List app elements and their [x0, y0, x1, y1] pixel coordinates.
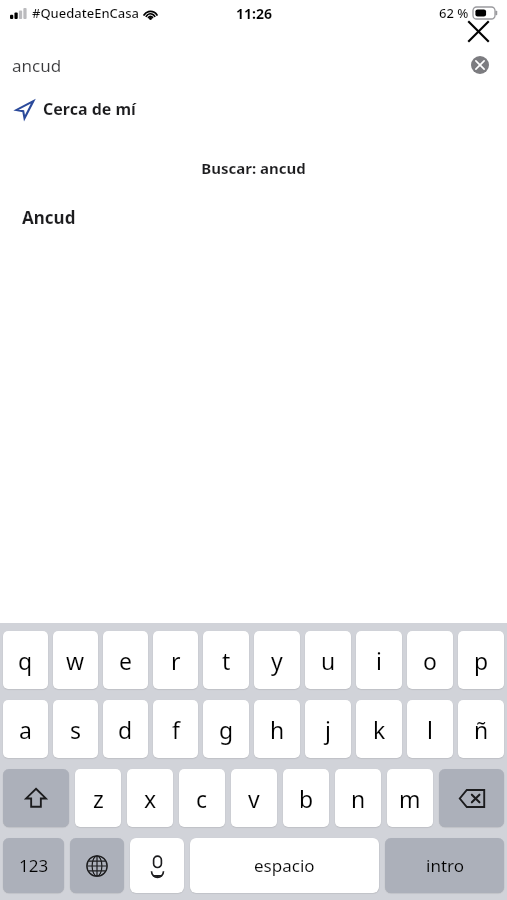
button[interactable]: x: [127, 769, 173, 827]
staticText: v: [248, 783, 260, 814]
staticText: o: [423, 645, 437, 676]
button[interactable]: Dictado por voz: [130, 838, 184, 893]
staticText: b: [299, 783, 314, 814]
button[interactable]: q: [3, 631, 48, 689]
staticText: #QuedateEnCasa: [32, 4, 139, 22]
staticText: q: [18, 645, 33, 676]
staticText: 11:26: [236, 4, 272, 23]
button[interactable]: b: [283, 769, 329, 827]
staticText: p: [474, 645, 489, 676]
button[interactable]: h: [254, 700, 300, 758]
button[interactable]: w: [53, 631, 98, 689]
button[interactable]: n: [335, 769, 381, 827]
staticText: ñ: [474, 714, 489, 745]
staticText: Buscar: ancud: [0, 158, 507, 178]
button[interactable]: intro: [385, 838, 504, 893]
staticText: 62 %: [439, 4, 469, 22]
staticText: ancud: [12, 54, 62, 77]
staticText: l: [427, 714, 433, 745]
button[interactable]: Cambiar teclado: [70, 838, 124, 893]
staticText: Ancud: [22, 206, 76, 229]
button[interactable]: o: [407, 631, 453, 689]
staticText: r: [171, 645, 181, 676]
button[interactable]: Cerrar: [461, 14, 495, 48]
staticText: i: [376, 645, 382, 676]
button[interactable]: z: [75, 769, 121, 827]
staticText: n: [351, 783, 366, 814]
button[interactable]: j: [305, 700, 351, 758]
button[interactable]: y: [254, 631, 300, 689]
staticText: f: [172, 714, 180, 745]
button[interactable]: Cerca de mí: [0, 96, 507, 122]
button[interactable]: g: [203, 700, 249, 758]
button[interactable]: Borrar texto: [467, 52, 493, 78]
button[interactable]: v: [231, 769, 277, 827]
staticText: h: [270, 714, 285, 745]
staticText: z: [93, 783, 104, 814]
staticText: g: [219, 714, 234, 745]
button[interactable]: a: [3, 700, 48, 758]
button[interactable]: k: [356, 700, 402, 758]
button[interactable]: ancud: [12, 54, 62, 77]
button[interactable]: i: [356, 631, 402, 689]
staticText: c: [196, 783, 208, 814]
button[interactable]: m: [387, 769, 433, 827]
staticText: m: [399, 783, 421, 814]
button[interactable]: r: [153, 631, 198, 689]
button[interactable]: l: [407, 700, 453, 758]
staticText: k: [373, 714, 386, 745]
button[interactable]: f: [153, 700, 198, 758]
staticText: s: [70, 714, 82, 745]
button[interactable]: p: [458, 631, 504, 689]
button[interactable]: ñ: [458, 700, 504, 758]
staticText: 123: [19, 854, 49, 877]
button[interactable]: u: [305, 631, 351, 689]
staticText: a: [19, 714, 32, 745]
button[interactable]: d: [103, 700, 148, 758]
staticText: w: [66, 645, 85, 676]
button[interactable]: Retroceso: [439, 769, 504, 827]
staticText: t: [222, 645, 231, 676]
staticText: x: [144, 783, 157, 814]
staticText: Cerca de mí: [43, 98, 136, 120]
button[interactable]: espacio: [190, 838, 379, 893]
button[interactable]: t: [203, 631, 249, 689]
button[interactable]: 123: [3, 838, 64, 893]
staticText: y: [271, 645, 283, 676]
button[interactable]: c: [179, 769, 225, 827]
button[interactable]: e: [103, 631, 148, 689]
staticText: d: [118, 714, 133, 745]
staticText: espacio: [254, 854, 315, 877]
staticText: intro: [426, 854, 464, 877]
staticText: u: [321, 645, 336, 676]
button[interactable]: Mayúsculas: [3, 769, 69, 827]
button[interactable]: s: [53, 700, 98, 758]
staticText: e: [119, 645, 132, 676]
button[interactable]: Ancud: [0, 204, 507, 231]
staticText: j: [325, 714, 331, 745]
